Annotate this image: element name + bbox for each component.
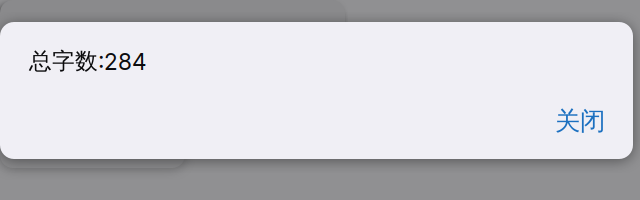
staticText: 关闭 bbox=[555, 105, 605, 137]
button[interactable]: 关闭 bbox=[555, 105, 633, 159]
staticText: 总字数:284 bbox=[29, 47, 147, 76]
